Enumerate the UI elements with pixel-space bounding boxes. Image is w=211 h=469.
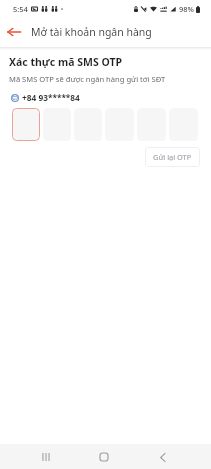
staticText: 5:54 <box>13 4 28 14</box>
button[interactable]: Home <box>92 445 116 469</box>
staticText: +84 93*****84 <box>22 92 80 103</box>
staticText: Xác thực mã SMS OTP <box>9 55 122 69</box>
staticText: Gửi lại OTP <box>153 152 192 162</box>
button[interactable] <box>12 108 40 141</box>
button[interactable]: Back <box>151 445 175 469</box>
staticText: Mã SMS OTP sẽ được ngân hàng gửi tới SĐT <box>9 74 166 84</box>
staticText: 98% <box>179 4 194 14</box>
button[interactable]: Back <box>3 21 25 43</box>
button[interactable]: Recent apps <box>34 445 58 469</box>
button[interactable]: Gửi lại OTP <box>145 147 200 167</box>
staticText: Mở tài khoản ngân hàng <box>31 25 152 39</box>
